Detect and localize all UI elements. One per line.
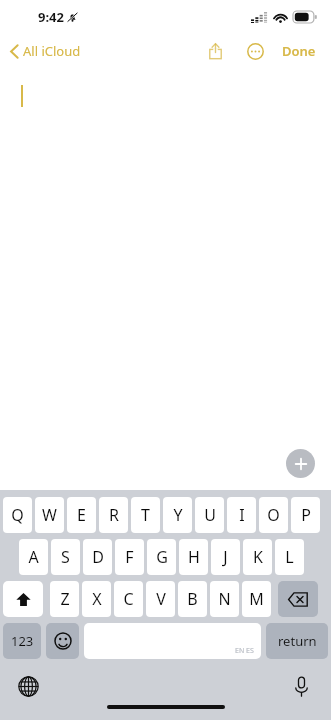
staticText: K	[253, 546, 263, 568]
button[interactable]: X	[82, 581, 111, 617]
staticText: J	[223, 546, 228, 568]
staticText: 9:42	[38, 8, 64, 26]
button[interactable]: All iCloud	[7, 39, 84, 63]
staticText: S	[61, 546, 70, 568]
button[interactable]: L	[275, 539, 304, 575]
button[interactable]: Add attachment	[286, 449, 315, 478]
button[interactable]: More options	[240, 36, 270, 66]
button[interactable]: S	[51, 539, 80, 575]
staticText: V	[156, 588, 166, 610]
button[interactable]: M	[242, 581, 271, 617]
staticText: I	[239, 504, 245, 526]
button[interactable]: 123	[3, 623, 41, 659]
staticText: All iCloud	[23, 42, 81, 60]
button[interactable]: I	[227, 497, 256, 533]
staticText: P	[301, 504, 311, 526]
button[interactable]: G	[147, 539, 176, 575]
staticText: B	[187, 588, 198, 610]
button[interactable]: T	[131, 497, 160, 533]
button[interactable]: V	[146, 581, 175, 617]
button[interactable]: Y	[163, 497, 192, 533]
button[interactable]: O	[259, 497, 288, 533]
staticText: C	[123, 588, 134, 610]
staticText: D	[92, 546, 104, 568]
button[interactable]: Q	[3, 497, 32, 533]
staticText: M	[249, 588, 264, 610]
staticText: return	[278, 632, 317, 650]
staticText: N	[218, 588, 231, 610]
button[interactable]: N	[210, 581, 239, 617]
button[interactable]: return	[266, 623, 328, 659]
button[interactable]: A	[19, 539, 48, 575]
button[interactable]: Change keyboard	[12, 670, 44, 702]
staticText: R	[109, 504, 119, 526]
button[interactable]: D	[83, 539, 112, 575]
button[interactable]: C	[114, 581, 143, 617]
button[interactable]: F	[115, 539, 144, 575]
staticText: A	[28, 546, 39, 568]
staticText: Q	[11, 504, 24, 526]
button[interactable]: K	[243, 539, 272, 575]
button[interactable]: E	[67, 497, 96, 533]
button[interactable]: Space	[84, 623, 261, 659]
button[interactable]: J	[211, 539, 240, 575]
button[interactable]: B	[178, 581, 207, 617]
button[interactable]: U	[195, 497, 224, 533]
staticText: Done	[282, 42, 316, 60]
button[interactable]: Shift	[3, 581, 43, 617]
staticText: W	[42, 504, 57, 526]
staticText: G	[156, 546, 168, 568]
staticText: U	[204, 504, 216, 526]
staticText: 123	[11, 632, 34, 650]
staticText: O	[267, 504, 280, 526]
button[interactable]: P	[291, 497, 320, 533]
staticText: F	[125, 546, 134, 568]
button[interactable]: Dictation	[285, 670, 317, 702]
staticText: E	[77, 504, 86, 526]
button[interactable]: H	[179, 539, 208, 575]
staticText: Z	[60, 588, 70, 610]
staticText: EN ES	[235, 646, 254, 656]
staticText: X	[92, 588, 102, 610]
button[interactable]: W	[35, 497, 64, 533]
button[interactable]: Done	[278, 38, 320, 64]
staticText: L	[285, 546, 294, 568]
button[interactable]: Delete	[278, 581, 318, 617]
button[interactable]: Share	[200, 36, 230, 66]
staticText: Y	[173, 504, 183, 526]
button[interactable]: Z	[50, 581, 79, 617]
staticText: T	[141, 504, 150, 526]
button[interactable]: R	[99, 497, 128, 533]
staticText: H	[188, 546, 200, 568]
button[interactable]: Emoji	[46, 623, 79, 659]
